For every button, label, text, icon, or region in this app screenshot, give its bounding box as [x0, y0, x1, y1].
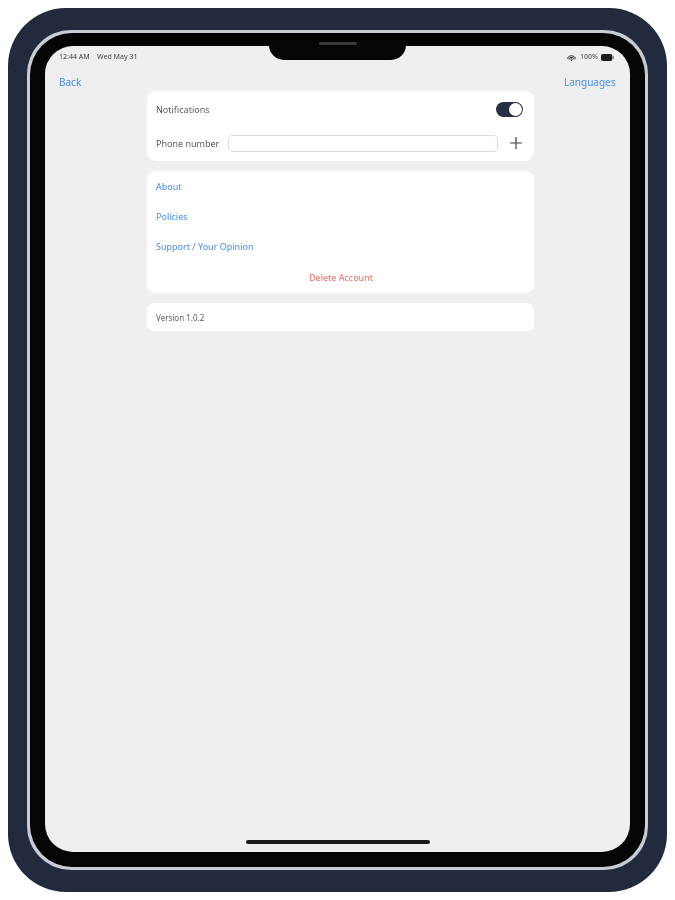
staticText: Delete Account [309, 271, 373, 283]
staticText: 100% [580, 52, 598, 62]
button[interactable]: Notifications toggle [496, 102, 523, 117]
staticText: Policies [156, 210, 188, 222]
staticText: Phone number [156, 137, 220, 149]
button[interactable]: Support / Your Opinion [147, 231, 534, 261]
button[interactable]: Add phone number [507, 134, 525, 152]
button[interactable] [228, 135, 498, 152]
button[interactable]: Notifications [147, 91, 534, 127]
staticText: Back [59, 75, 82, 89]
staticText: Notifications [156, 103, 210, 115]
button[interactable]: Languages [554, 72, 630, 92]
button[interactable]: Delete Account [147, 261, 534, 293]
staticText: Support / Your Opinion [156, 240, 254, 252]
button[interactable]: Back [45, 72, 92, 92]
staticText: Languages [564, 75, 616, 89]
staticText: About [156, 180, 182, 192]
button[interactable]: Version 1.0.2 [147, 303, 534, 331]
button[interactable]: Policies [147, 201, 534, 231]
staticText: Version 1.0.2 [156, 312, 205, 323]
staticText: 12:44 AM [59, 52, 90, 62]
staticText: Wed May 31 [97, 52, 138, 62]
button[interactable]: About [147, 171, 534, 201]
